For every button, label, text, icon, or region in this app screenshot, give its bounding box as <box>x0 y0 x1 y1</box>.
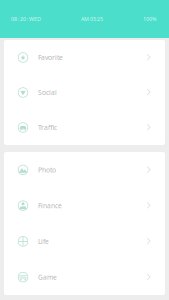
staticText: Favorite <box>38 53 63 62</box>
button[interactable]: Photo <box>4 152 165 188</box>
button[interactable]: Finance <box>4 188 165 224</box>
staticText: AM 05:25 <box>81 15 103 23</box>
button[interactable]: Favorite <box>4 40 165 75</box>
button[interactable]: Life <box>4 223 165 259</box>
staticText: 100% <box>143 15 156 23</box>
staticText: Game <box>38 273 57 282</box>
staticText: Finance <box>38 201 62 210</box>
staticText: Social <box>38 88 57 97</box>
button[interactable]: Game <box>4 259 165 295</box>
button[interactable]: Social <box>4 75 165 110</box>
staticText: 08 : 20 : WED <box>11 15 41 23</box>
button[interactable]: Traffic <box>4 110 165 145</box>
staticText: Traffic <box>38 123 57 132</box>
staticText: Life <box>38 237 49 246</box>
staticText: Photo <box>38 165 56 174</box>
